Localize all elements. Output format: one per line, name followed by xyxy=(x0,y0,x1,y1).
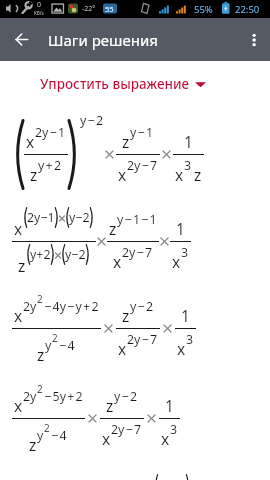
staticText: 22:50 xyxy=(235,3,260,16)
staticText: z xyxy=(18,255,26,276)
staticText: x xyxy=(177,338,186,359)
staticText: 55 xyxy=(105,4,114,14)
staticText: x xyxy=(26,131,35,152)
staticText: y − 2 xyxy=(130,298,153,315)
staticText: x xyxy=(172,251,181,272)
staticText: y − 2 xyxy=(114,388,137,405)
staticText: x xyxy=(118,338,127,359)
staticText: 2y xyxy=(23,298,37,315)
staticText: − 4 xyxy=(58,337,75,354)
staticText: − 4y − y + 2 xyxy=(43,298,99,315)
staticText: 2 xyxy=(37,292,43,306)
button[interactable]: Back xyxy=(0,18,43,61)
staticText: 1 xyxy=(176,218,185,239)
staticText: 3 xyxy=(184,157,192,174)
staticText: 1 xyxy=(184,131,193,152)
staticText: 55% xyxy=(194,3,213,16)
staticText: 1 xyxy=(165,395,174,416)
staticText: z xyxy=(106,395,114,416)
staticText: − 4 xyxy=(50,427,67,444)
staticText: x xyxy=(161,428,170,449)
staticText: x xyxy=(14,305,23,326)
staticText: y xyxy=(37,427,44,444)
staticText: x xyxy=(113,251,122,272)
staticText: KB/s xyxy=(34,10,44,16)
staticText: z xyxy=(29,434,37,455)
button[interactable]: Упростить выражение xyxy=(40,72,206,96)
staticText: y−2 xyxy=(69,209,90,226)
staticText: − 5y + 2 xyxy=(43,388,83,405)
staticText: -22° xyxy=(82,4,96,14)
staticText: z xyxy=(122,305,130,326)
staticText: 1 xyxy=(181,305,190,326)
staticText: 2 xyxy=(44,421,50,435)
staticText: x xyxy=(175,164,184,185)
staticText: 3 xyxy=(181,244,189,261)
staticText: x xyxy=(102,428,111,449)
staticText: z xyxy=(109,218,117,239)
staticText: y − 2 xyxy=(80,112,103,129)
staticText: 2y − 7 xyxy=(111,421,142,438)
staticText: 2y xyxy=(23,388,37,405)
staticText: 2y − 1 xyxy=(35,124,66,141)
staticText: y − 1 − 1 xyxy=(117,211,157,228)
staticText: x xyxy=(118,164,127,185)
staticText: z xyxy=(37,344,45,365)
staticText: 2 xyxy=(37,382,43,396)
staticText: 2y − 7 xyxy=(127,331,158,348)
staticText: x xyxy=(14,218,23,239)
staticText: 3 xyxy=(186,331,194,348)
staticText: 2y−1 xyxy=(27,209,55,226)
button[interactable]: More options xyxy=(227,18,270,61)
staticText: 2y − 7 xyxy=(127,157,158,174)
staticText: z xyxy=(122,131,130,152)
staticText: 2y − 7 xyxy=(122,244,153,261)
staticText: 0 xyxy=(37,0,42,10)
staticText: z xyxy=(30,164,38,185)
staticText: Упростить выражение xyxy=(40,75,190,93)
staticText: x xyxy=(14,395,23,416)
staticText: y−2 xyxy=(65,246,86,263)
staticText: 3 xyxy=(170,421,178,438)
staticText: y − 1 xyxy=(130,124,153,141)
staticText: y + 2 xyxy=(38,157,61,174)
staticText: z xyxy=(194,164,202,185)
staticText: y xyxy=(45,337,52,354)
staticText: Шаги решения xyxy=(48,30,158,50)
staticText: y+2 xyxy=(30,246,51,263)
staticText: 2 xyxy=(52,331,58,345)
